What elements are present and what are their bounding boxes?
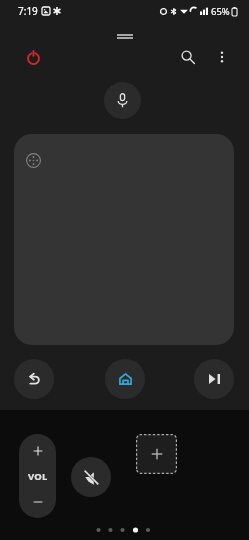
button[interactable]: Power [19, 43, 47, 71]
button[interactable]: Mute [71, 457, 111, 497]
staticText: 7:19 [18, 4, 38, 18]
button[interactable]: Search [174, 43, 202, 71]
button[interactable]: Play or pause [194, 359, 234, 399]
button[interactable]: Add shortcut [136, 434, 177, 474]
staticText: 65% [211, 5, 230, 18]
button[interactable]: More options [208, 43, 236, 71]
button[interactable]: Home [105, 359, 145, 399]
button[interactable]: Voice search [104, 82, 141, 119]
button[interactable]: Touchpad [14, 134, 234, 345]
button[interactable]: Volume up [19, 434, 56, 467]
staticText: VOL [28, 470, 48, 483]
button[interactable]: Back [14, 359, 54, 399]
button[interactable]: Volume down [19, 485, 56, 518]
